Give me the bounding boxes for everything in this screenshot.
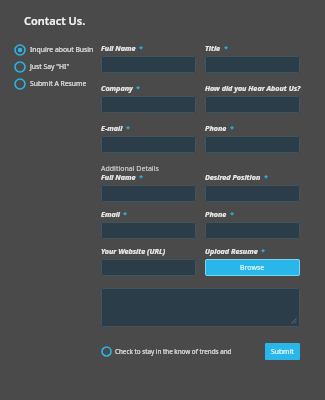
button[interactable] <box>101 96 196 113</box>
staticText: Inquire about Busin <box>30 45 94 54</box>
staticText: How did you Hear About Us? <box>205 83 301 93</box>
button[interactable] <box>205 56 300 73</box>
staticText: Desired Position <box>205 172 261 182</box>
staticText: Check to stay in the know of trends and … <box>115 347 239 356</box>
staticText: Email <box>101 209 120 219</box>
button[interactable]: Submit <box>265 343 300 360</box>
staticText: Your Website (URL) <box>101 246 166 256</box>
staticText: Phone <box>205 123 227 133</box>
staticText: * <box>261 246 266 256</box>
staticText: Just Say "HI" <box>30 62 70 71</box>
button[interactable]: Submit A Resume <box>14 76 98 91</box>
staticText: * <box>136 83 141 93</box>
staticText: E-mail <box>101 123 123 133</box>
staticText: Company <box>101 83 133 93</box>
staticText: Submit <box>271 347 294 356</box>
button[interactable] <box>205 185 300 202</box>
staticText: Phone <box>205 209 227 219</box>
staticText: * <box>139 172 144 182</box>
staticText: * <box>123 209 128 219</box>
staticText: Additional Details <box>101 164 159 171</box>
staticText: Title <box>205 43 221 53</box>
button[interactable]: Inquire about Busin <box>14 42 98 57</box>
button[interactable] <box>205 96 300 113</box>
button[interactable] <box>101 136 196 153</box>
button[interactable] <box>205 222 300 239</box>
staticText: Contact Us. <box>24 13 86 28</box>
staticText: Upload Resume <box>205 246 258 256</box>
button[interactable] <box>205 136 300 153</box>
staticText: * <box>139 43 144 53</box>
staticText: Full Name <box>101 172 136 182</box>
button[interactable]: Check to stay in the know of trends and … <box>101 344 239 359</box>
staticText: Full Name <box>101 43 136 53</box>
button[interactable] <box>101 259 196 276</box>
button[interactable]: Just Say "HI" <box>14 59 98 74</box>
staticText: Browse <box>240 263 265 273</box>
button[interactable] <box>101 56 196 73</box>
staticText: Submit A Resume <box>30 79 87 88</box>
button[interactable]: Browse <box>205 259 300 276</box>
staticText: * <box>230 209 235 219</box>
staticText: * <box>230 123 235 133</box>
staticText: * <box>126 123 131 133</box>
staticText: * <box>224 43 229 53</box>
button[interactable] <box>101 185 196 202</box>
button[interactable] <box>101 222 196 239</box>
button[interactable] <box>101 288 300 327</box>
staticText: * <box>264 172 269 182</box>
